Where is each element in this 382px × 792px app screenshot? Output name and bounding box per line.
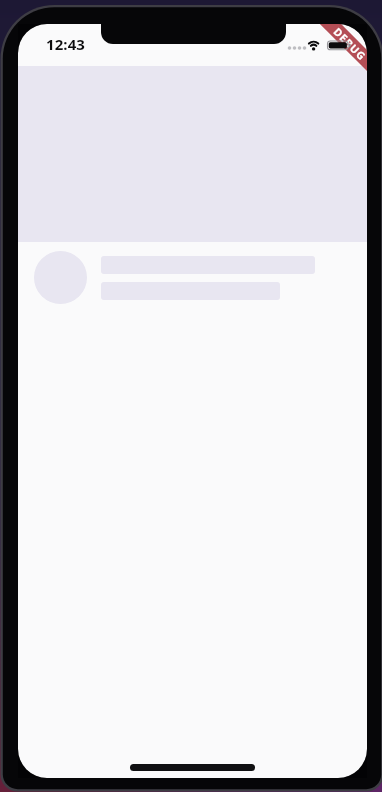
staticText: DEBUG <box>331 25 367 64</box>
staticText: 12:43 <box>46 34 86 54</box>
